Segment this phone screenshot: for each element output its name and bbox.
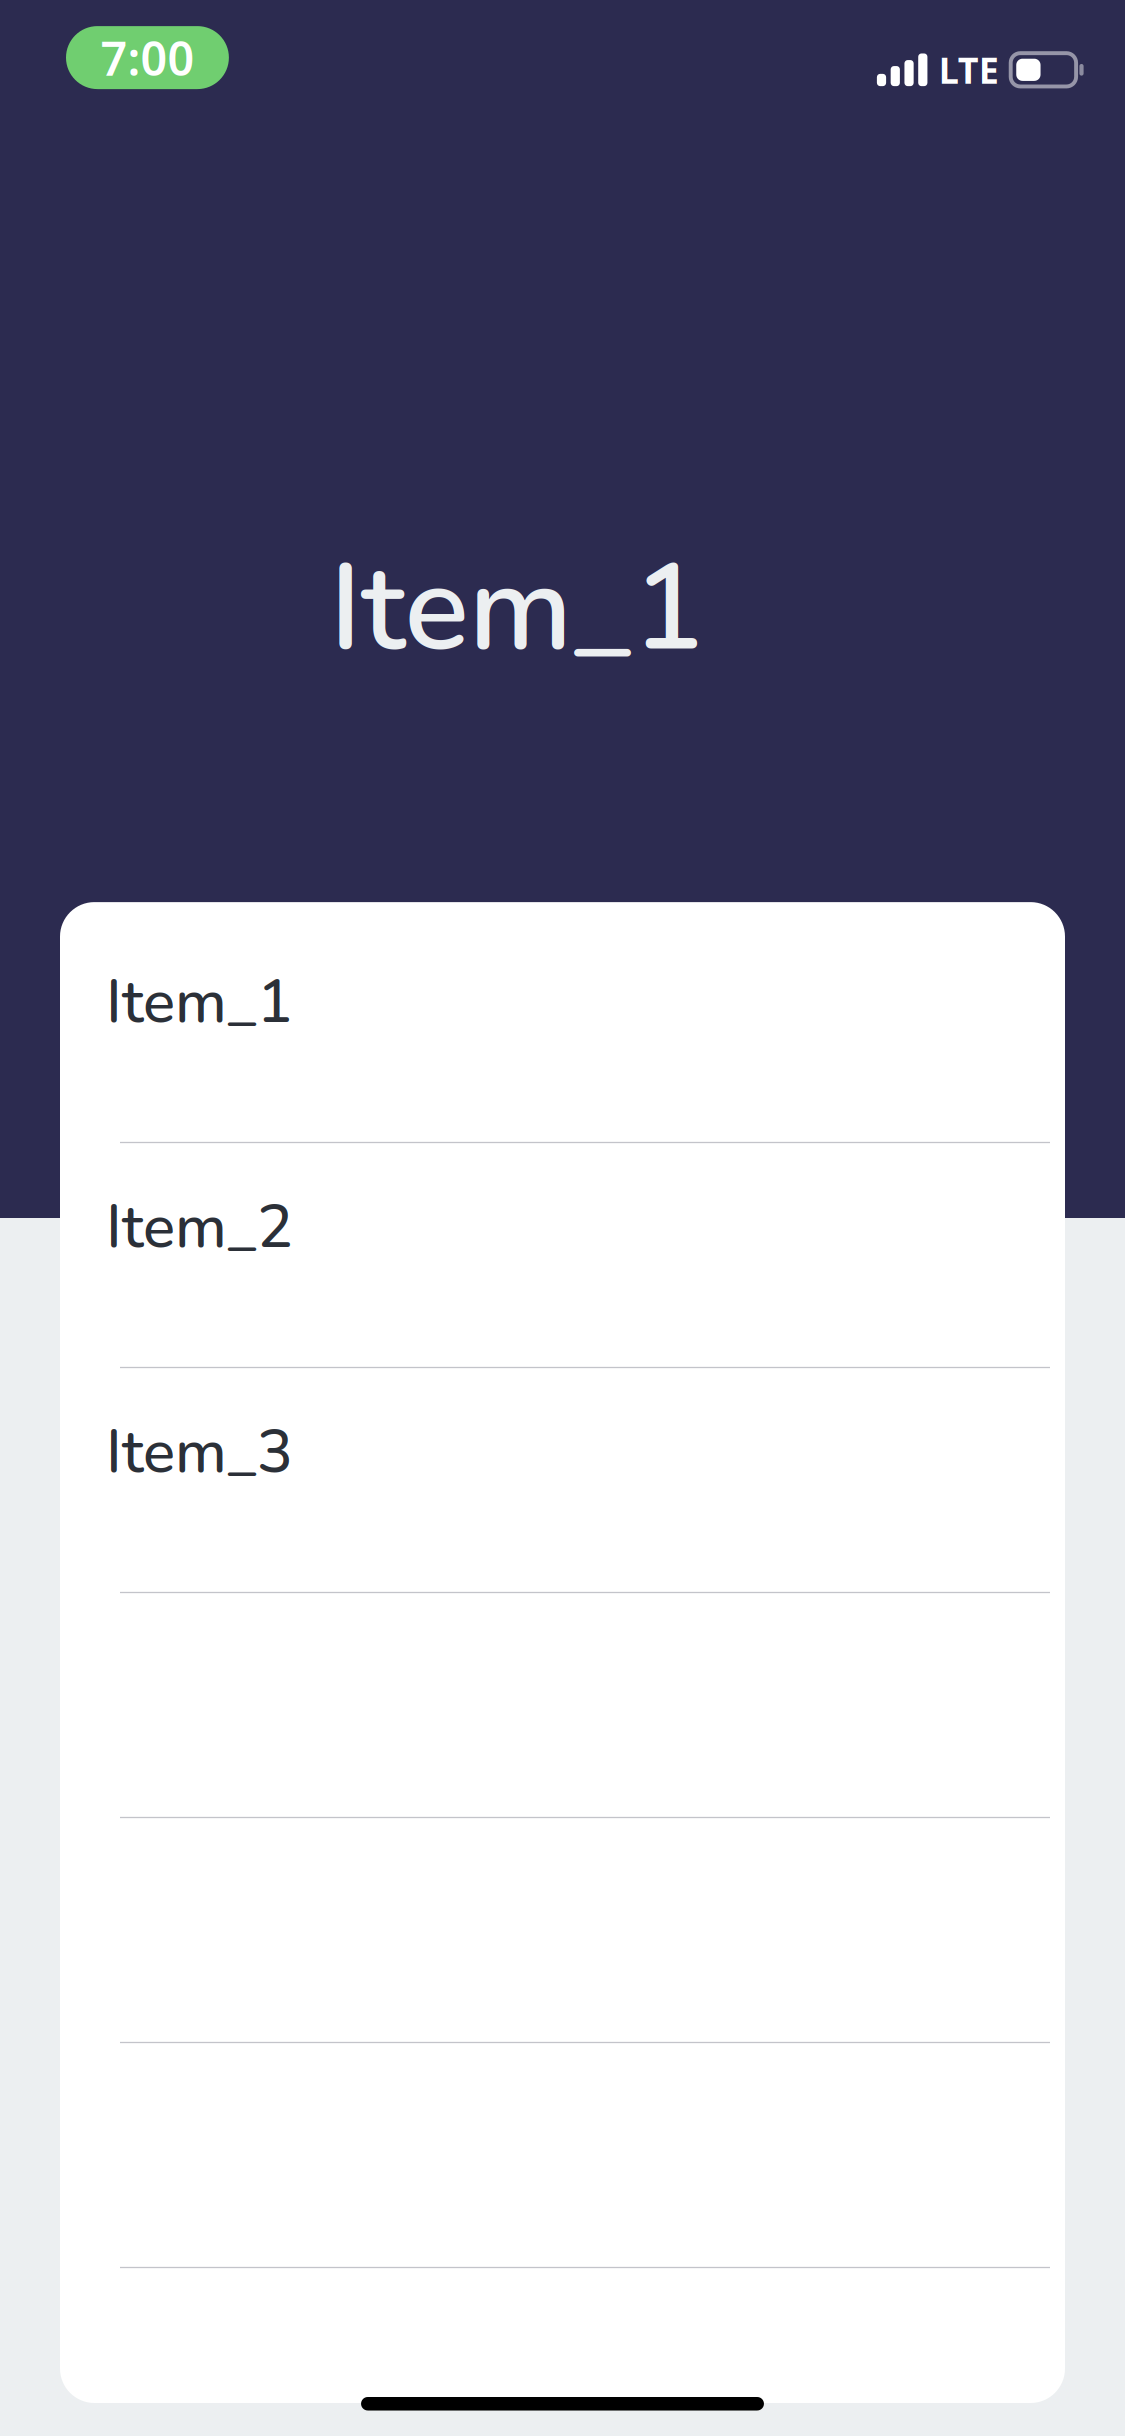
button[interactable]: Empty row <box>60 1593 1065 1818</box>
button[interactable]: Item_3 <box>60 1368 1065 1593</box>
staticText: Item_3 <box>106 1411 293 1493</box>
button[interactable]: Item_2 <box>60 1143 1065 1368</box>
staticText: Item_1 <box>106 961 293 1043</box>
button[interactable]: Item_1 <box>60 918 1065 1143</box>
button[interactable]: Empty row <box>60 1818 1065 2043</box>
button[interactable]: Empty row <box>60 2043 1065 2268</box>
staticText: Item_2 <box>106 1186 293 1268</box>
staticText: LTE <box>939 46 999 94</box>
staticText: 7:00 <box>100 27 194 89</box>
staticText: Item_1 <box>329 527 704 691</box>
